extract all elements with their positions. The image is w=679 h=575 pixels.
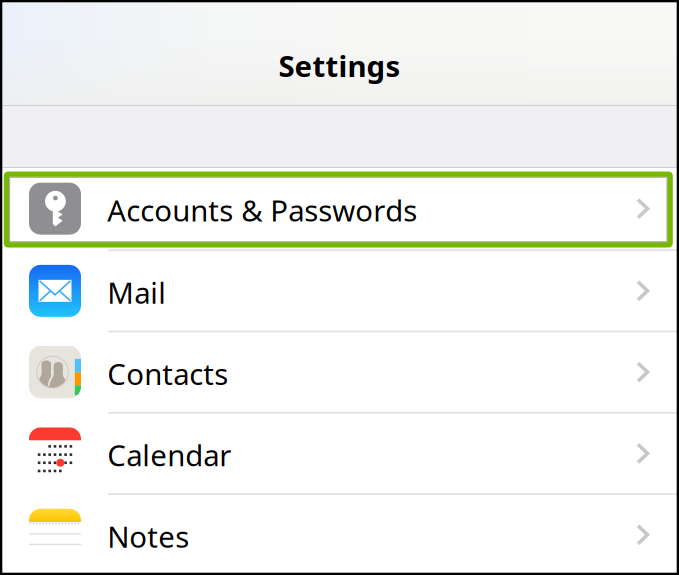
staticText: Calendar: [107, 435, 231, 474]
button[interactable]: Mail: [0, 249, 679, 331]
button[interactable]: Accounts & Passwords: [0, 168, 679, 249]
staticText: Settings: [278, 46, 400, 85]
staticText: Accounts & Passwords: [107, 191, 417, 230]
button[interactable]: Calendar: [0, 412, 679, 493]
staticText: Contacts: [107, 354, 228, 393]
staticText: Notes: [107, 517, 189, 556]
staticText: Mail: [107, 273, 166, 312]
button[interactable]: Contacts: [0, 331, 679, 412]
button[interactable]: Notes: [0, 493, 679, 574]
